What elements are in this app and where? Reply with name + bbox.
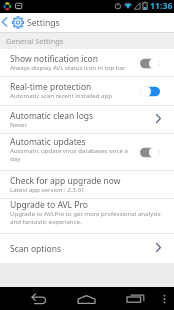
button[interactable]: Off bbox=[139, 56, 161, 70]
button[interactable]: Automatic clean logs bbox=[0, 106, 174, 133]
staticText: Show notification icon bbox=[10, 53, 98, 65]
staticText: Scan options bbox=[10, 243, 62, 255]
staticText: 11:36 bbox=[150, 0, 173, 12]
button[interactable]: Open bbox=[151, 239, 165, 255]
button[interactable]: Automatic updates bbox=[0, 134, 174, 170]
staticText: Latest app version : 2.3.01 bbox=[10, 185, 85, 193]
button[interactable]: Off bbox=[139, 145, 161, 159]
staticText: Upgrade to AVLPro to get more profession… bbox=[10, 209, 161, 225]
staticText: Automatic update virus databases once a … bbox=[10, 146, 134, 162]
staticText: Automatic scan recent installed app bbox=[10, 91, 113, 99]
button[interactable]: Upgrade to AVL Pro bbox=[0, 199, 174, 233]
staticText: Never bbox=[10, 120, 27, 128]
button[interactable]: Back bbox=[0, 13, 10, 33]
button[interactable]: Home bbox=[68, 287, 106, 310]
staticText: Real-time protection bbox=[10, 81, 92, 93]
button[interactable]: Scan options bbox=[0, 234, 174, 263]
button[interactable]: More options bbox=[158, 287, 172, 310]
staticText: Upgrade to AVL Pro bbox=[10, 199, 88, 211]
button[interactable]: Check for app upgrade now bbox=[0, 171, 174, 198]
button[interactable]: Back bbox=[20, 287, 58, 310]
button[interactable]: Recent apps bbox=[116, 287, 150, 310]
staticText: Automatic updates bbox=[10, 136, 86, 148]
staticText: Always display AVL status icon in top ba… bbox=[10, 63, 126, 71]
staticText: Automatic clean logs bbox=[10, 110, 94, 122]
button[interactable]: Show notification icon bbox=[0, 49, 174, 76]
button[interactable]: Open bbox=[151, 110, 165, 126]
staticText: Check for app upgrade now bbox=[10, 175, 121, 187]
button[interactable]: On bbox=[139, 84, 161, 98]
staticText: General Settings bbox=[6, 36, 64, 46]
button[interactable]: Real-time protection bbox=[0, 77, 174, 105]
button[interactable]: Settings bbox=[11, 16, 25, 29]
staticText: Settings bbox=[27, 17, 60, 29]
